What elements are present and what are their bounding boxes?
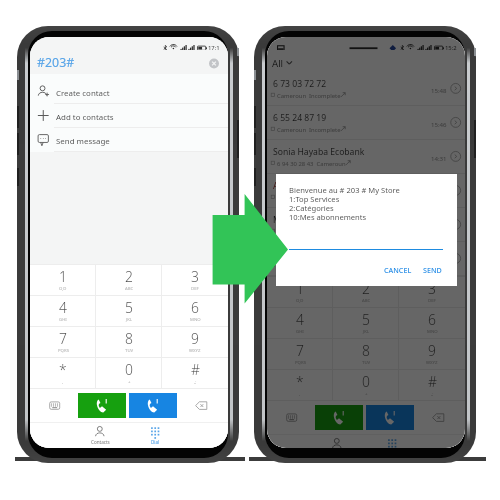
staticText: Cameroun Incomplete xyxy=(277,92,341,100)
button[interactable]: Delete xyxy=(429,410,447,425)
button[interactable]: Delete xyxy=(192,398,210,413)
button[interactable]: CANCEL xyxy=(381,262,414,278)
button[interactable]: 6 xyxy=(162,296,228,326)
button[interactable]: Maman xyxy=(267,208,465,241)
staticText: + xyxy=(365,390,368,396)
button[interactable]: Send message xyxy=(30,128,228,151)
staticText: 6 55 24 87 19 xyxy=(273,112,327,124)
staticText: 15:48 xyxy=(431,86,447,94)
staticText: 1 xyxy=(296,279,304,298)
staticText: 2 xyxy=(125,267,133,286)
staticText: DEF xyxy=(191,285,199,291)
staticText: O,D xyxy=(59,285,67,291)
staticText: 9 xyxy=(428,341,436,360)
staticText: Cameroun Incomplete xyxy=(277,194,341,202)
staticText: 4 xyxy=(296,310,304,329)
button[interactable]: 7 xyxy=(30,327,96,357)
staticText: 3 xyxy=(191,267,199,286)
staticText: 1 xyxy=(59,267,67,286)
staticText: Send message xyxy=(56,136,110,147)
button[interactable]: Contacts tab xyxy=(75,423,125,447)
staticText: 0 xyxy=(125,360,133,379)
button[interactable]: 6 73 03 72 72 xyxy=(267,72,465,105)
button[interactable]: 2 xyxy=(333,277,399,307)
button[interactable]: 8 xyxy=(333,339,399,369)
button[interactable]: Arnauld Nguebou xyxy=(267,174,465,207)
staticText: GHI xyxy=(59,316,67,322)
button[interactable]: Add to contacts xyxy=(30,104,228,127)
staticText: #203# xyxy=(37,54,75,71)
button[interactable]: 8 xyxy=(96,327,162,357)
staticText: SEND xyxy=(423,265,442,275)
button[interactable]: 1 xyxy=(267,277,333,307)
staticText: O,D xyxy=(296,297,304,303)
button[interactable]: Sonia Hayaba Ecobank xyxy=(267,140,465,173)
staticText: Contacts xyxy=(91,439,110,445)
button[interactable]: Contacts tab xyxy=(312,435,362,448)
button[interactable]: Create contact xyxy=(30,80,228,103)
staticText: * xyxy=(59,360,67,379)
staticText: 6 xyxy=(428,310,436,329)
staticText: 6 94 30 28 43 Cameroun xyxy=(277,160,346,168)
button[interactable]: 6 55 24 87 19 xyxy=(267,106,465,139)
button[interactable]: Call with SIM 2 xyxy=(129,393,177,418)
staticText: , xyxy=(62,378,64,384)
button[interactable]: 5 xyxy=(96,296,162,326)
staticText: 15:46 xyxy=(431,120,447,128)
staticText: 8 xyxy=(362,341,370,360)
button[interactable]: 9 xyxy=(162,327,228,357)
staticText: GHI xyxy=(296,328,304,334)
staticText: DEF xyxy=(428,297,436,303)
button[interactable]: Clear input xyxy=(205,54,224,73)
button[interactable]: 2 xyxy=(96,265,162,295)
button[interactable]: SEND xyxy=(421,262,444,278)
staticText: # xyxy=(428,372,437,391)
button[interactable]: 0 xyxy=(333,370,399,400)
staticText: Sonia Hayaba Ecobank xyxy=(273,146,365,158)
staticText: Arnauld Nguebou xyxy=(273,180,345,192)
staticText: Add to contacts xyxy=(56,112,114,123)
staticText: 5 xyxy=(125,298,133,317)
staticText: 10:Mes abonnements xyxy=(289,212,367,222)
staticText: + xyxy=(128,378,131,384)
button[interactable]: 1 xyxy=(30,265,96,295)
button[interactable]: Service client xyxy=(267,242,465,275)
staticText: 9 xyxy=(191,329,199,348)
button[interactable]: 5 xyxy=(333,308,399,338)
button[interactable]: Call with SIM 2 xyxy=(366,405,414,430)
button[interactable]: 6 xyxy=(399,308,465,338)
button[interactable]: 4 xyxy=(267,308,333,338)
staticText: ABC xyxy=(125,285,134,291)
button[interactable]: Call with SIM 1 xyxy=(315,405,363,430)
button[interactable]: # xyxy=(162,358,228,388)
button[interactable]: Keyboard xyxy=(46,398,64,413)
button[interactable]: * xyxy=(267,370,333,400)
staticText: # xyxy=(191,360,200,379)
staticText: Bienvenue au # 203 # My Store xyxy=(289,185,400,195)
button[interactable]: 3 xyxy=(162,265,228,295)
button[interactable]: 7 xyxy=(267,339,333,369)
button[interactable]: # xyxy=(399,370,465,400)
button[interactable]: Dial tab xyxy=(130,423,180,447)
button[interactable]: 3 xyxy=(399,277,465,307)
staticText: Dial xyxy=(151,439,160,445)
button[interactable]: Keyboard xyxy=(283,410,301,425)
staticText: 8 xyxy=(125,329,133,348)
button[interactable]: 4 xyxy=(30,296,96,326)
button[interactable]: Call with SIM 1 xyxy=(78,393,126,418)
staticText: 2:Catégories xyxy=(289,203,334,213)
staticText: 7 xyxy=(59,329,67,348)
staticText: JKL xyxy=(126,316,133,322)
button[interactable]: All xyxy=(267,50,465,72)
staticText: CANCEL xyxy=(384,265,412,275)
button[interactable]: 0 xyxy=(96,358,162,388)
button[interactable]: #203# xyxy=(30,50,228,74)
button[interactable]: 9 xyxy=(399,339,465,369)
staticText: ,; xyxy=(431,390,434,396)
button[interactable]: * xyxy=(30,358,96,388)
staticText: 6 73 03 72 72 xyxy=(273,78,327,90)
button[interactable]: Dial tab xyxy=(367,435,417,448)
